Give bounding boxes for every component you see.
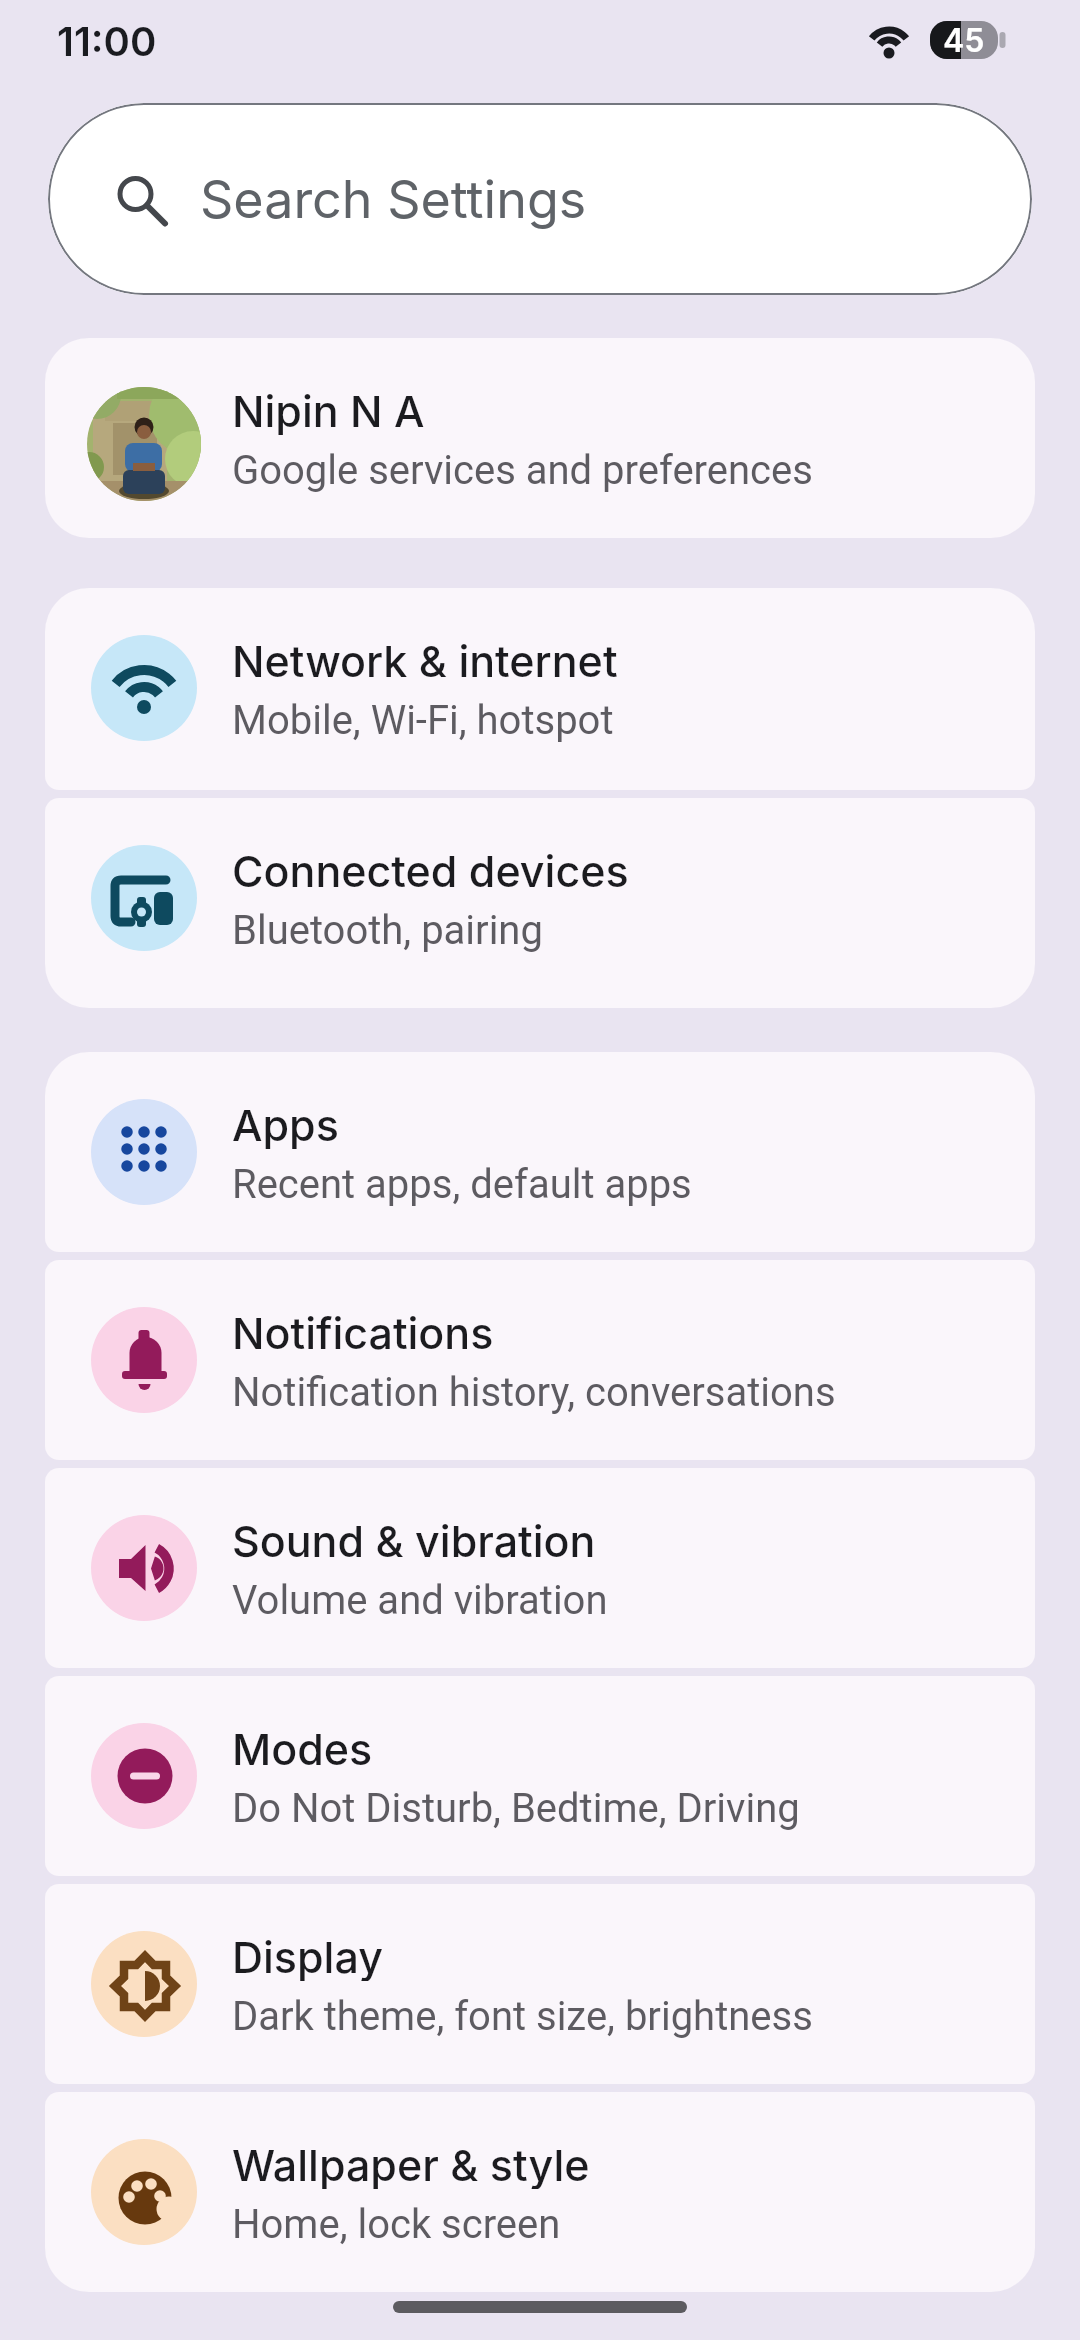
button[interactable]: Display — [45, 1884, 1035, 2084]
staticText: Google services and preferences — [232, 447, 813, 494]
staticText: Nipin N A — [232, 385, 425, 435]
button[interactable]: Nipin N A — [45, 338, 1035, 538]
button[interactable]: Network & internet — [45, 588, 1035, 790]
staticText: Do Not Disturb, Bedtime, Driving — [232, 1785, 800, 1832]
staticText: Connected devices — [232, 845, 629, 895]
button[interactable]: Sound & vibration — [45, 1468, 1035, 1668]
staticText: 11:00 — [57, 17, 157, 65]
staticText: Display — [232, 1931, 383, 1981]
button[interactable]: Apps — [45, 1052, 1035, 1252]
staticText: Notifications — [232, 1307, 494, 1357]
staticText: Recent apps, default apps — [232, 1161, 692, 1208]
staticText: Sound & vibration — [232, 1515, 596, 1565]
staticText: Apps — [232, 1099, 339, 1149]
staticText: Dark theme, font size, brightness — [232, 1993, 813, 2040]
staticText: 45 — [943, 21, 985, 59]
button[interactable]: Wallpaper & style — [45, 2092, 1035, 2292]
staticText: Volume and vibration — [232, 1577, 608, 1624]
staticText: Wallpaper & style — [232, 2139, 590, 2189]
staticText: Network & internet — [232, 635, 618, 685]
button[interactable]: Modes — [45, 1676, 1035, 1876]
staticText: Mobile, Wi-Fi, hotspot — [232, 697, 614, 744]
staticText: Notification history, conversations — [232, 1369, 836, 1416]
staticText: Bluetooth, pairing — [232, 907, 543, 954]
staticText: Search Settings — [200, 168, 587, 231]
button[interactable]: Connected devices — [45, 798, 1035, 1008]
staticText: Home, lock screen — [232, 2201, 561, 2248]
button[interactable]: Notifications — [45, 1260, 1035, 1460]
staticText: Modes — [232, 1723, 373, 1773]
button[interactable]: Search Settings — [48, 103, 1032, 295]
